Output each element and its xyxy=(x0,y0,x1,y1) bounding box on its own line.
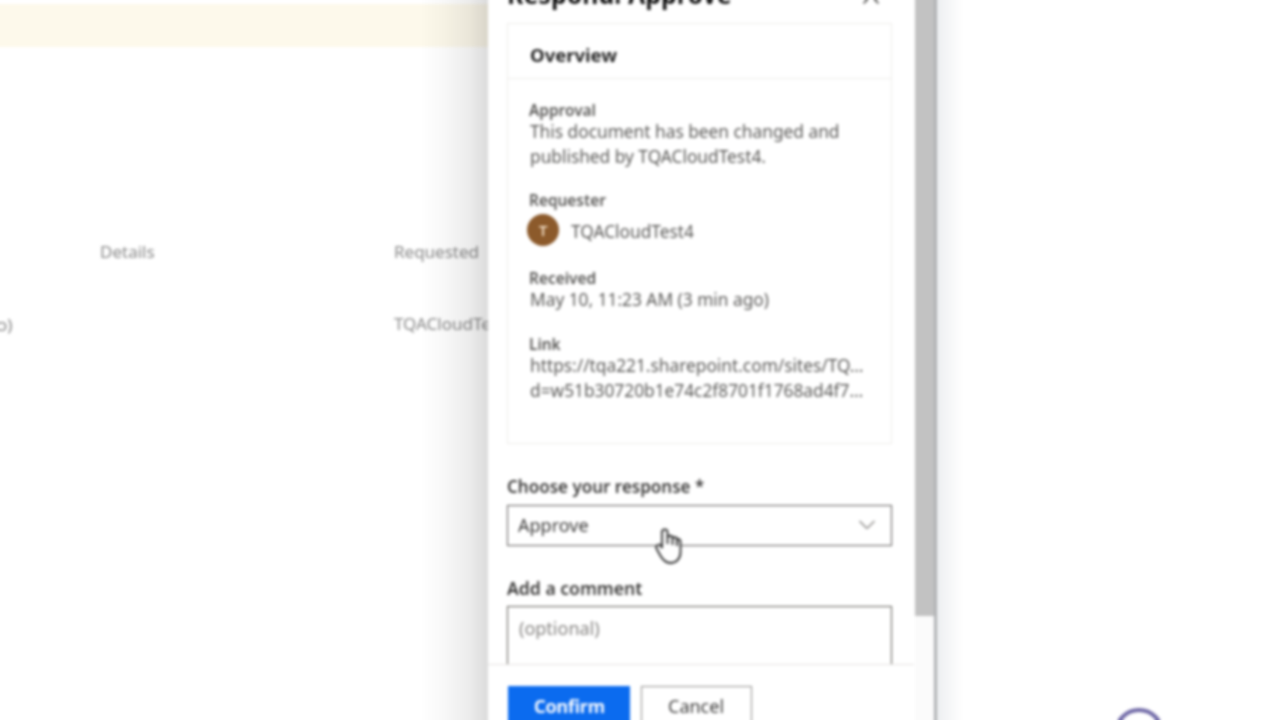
staticText: TQACloudTest4 xyxy=(571,220,694,244)
button[interactable]: Close xyxy=(858,0,884,9)
button[interactable]: Add a comment xyxy=(507,606,892,686)
staticText: Requested xyxy=(394,240,480,263)
staticText: Add a comment xyxy=(507,576,643,600)
staticText: Requester xyxy=(529,190,606,211)
staticText: Confirm xyxy=(534,694,605,719)
staticText: Overview xyxy=(530,42,618,67)
button[interactable]: Confirm xyxy=(508,686,630,720)
staticText: Approval xyxy=(529,100,596,121)
staticText: T xyxy=(539,220,548,240)
staticText: o) xyxy=(0,313,13,336)
staticText: d=w51b30720b1e74c2f8701f1768ad4f7… xyxy=(530,379,864,403)
staticText: (optional) xyxy=(519,616,600,641)
button[interactable]: Choose your response: Approve xyxy=(507,505,892,546)
staticText: https://tqa221.sharepoint.com/sites/TQ… xyxy=(530,354,864,378)
staticText: TQACloudTes xyxy=(394,312,499,335)
staticText: May 10, 11:23 AM (3 min ago) xyxy=(530,288,769,312)
button[interactable]: Cancel xyxy=(641,686,752,720)
staticText: published by TQACloudTest4. xyxy=(530,145,766,169)
staticText: Respond: Approve xyxy=(507,0,732,11)
staticText: Link xyxy=(529,334,561,355)
staticText: Details xyxy=(100,240,155,263)
staticText: Cancel xyxy=(668,694,725,719)
staticText: This document has been changed and xyxy=(530,120,840,144)
staticText: Approve xyxy=(518,513,589,538)
staticText: Received xyxy=(529,268,597,289)
staticText: Choose your response * xyxy=(507,475,705,498)
